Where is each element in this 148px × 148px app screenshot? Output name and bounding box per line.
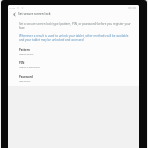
staticText: Set secure screen lock bbox=[18, 12, 51, 16]
staticText: Whenever a result is used to unlock your… bbox=[19, 34, 132, 42]
staticText: Medium to high security bbox=[19, 66, 41, 69]
staticText: PIN bbox=[19, 61, 25, 65]
staticText: Password bbox=[19, 75, 33, 79]
staticText: High security bbox=[19, 80, 31, 83]
button[interactable]: Back bbox=[10, 10, 18, 18]
staticText: Set a secure screen lock type (pattern, … bbox=[19, 22, 132, 30]
staticText: Pattern bbox=[19, 48, 30, 52]
button[interactable]: Password bbox=[16, 75, 139, 83]
button[interactable]: Pattern bbox=[16, 48, 139, 56]
staticText: 11:45 bbox=[9, 6, 16, 9]
button[interactable]: PIN bbox=[16, 61, 139, 69]
staticText: Medium security bbox=[19, 53, 34, 56]
